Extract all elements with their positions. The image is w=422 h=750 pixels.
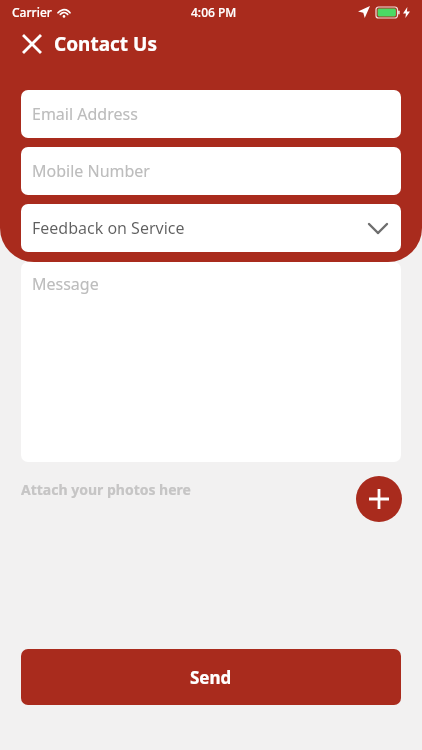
staticText: Mobile Number xyxy=(32,160,150,182)
staticText: 4:06 PM xyxy=(191,4,237,20)
button[interactable]: Feedback on Service xyxy=(21,204,401,252)
staticText: Carrier xyxy=(12,4,52,20)
staticText: Send xyxy=(190,666,232,689)
button[interactable]: Mobile Number xyxy=(21,147,401,195)
staticText: Message xyxy=(32,273,99,295)
button[interactable]: Close xyxy=(19,31,45,57)
staticText: Email Address xyxy=(32,103,138,125)
staticText: Feedback on Service xyxy=(32,217,185,239)
button[interactable]: Email Address xyxy=(21,90,401,138)
staticText: Attach your photos here xyxy=(21,480,191,499)
button[interactable]: Add photo xyxy=(356,476,402,522)
button[interactable]: Send xyxy=(21,649,401,705)
button[interactable]: Message xyxy=(21,262,401,462)
staticText: Contact Us xyxy=(54,31,157,57)
